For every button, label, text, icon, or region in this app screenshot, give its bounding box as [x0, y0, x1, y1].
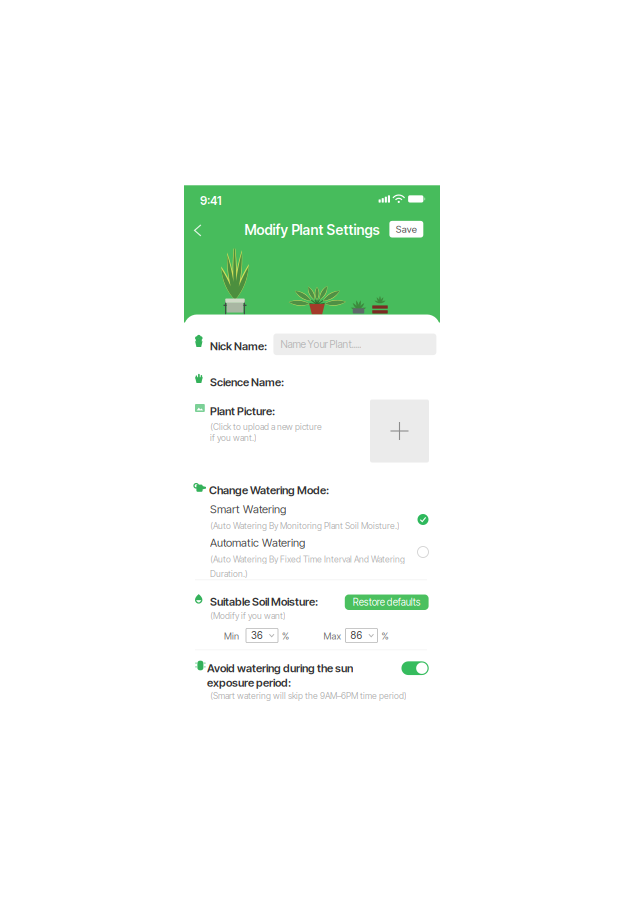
staticText: Name Your Plant..... — [280, 338, 361, 350]
staticText: (Modify if you want) — [210, 610, 286, 621]
staticText: Max — [323, 630, 341, 642]
staticText: 9:41 — [200, 194, 222, 208]
staticText: % — [282, 630, 289, 642]
staticText: exposure period: — [207, 676, 291, 690]
staticText: if you want.) — [210, 432, 257, 443]
staticText: 86 — [350, 629, 362, 641]
button[interactable]: Restore defaults — [345, 594, 429, 610]
button[interactable]: Save — [389, 221, 423, 237]
staticText: 36 — [251, 629, 263, 641]
staticText: Automatic Watering — [210, 536, 305, 550]
staticText: (Auto Watering By Fixed Time Interval An… — [210, 554, 405, 565]
staticText: (Smart watering will skip the 9AM–6PM ti… — [210, 690, 407, 701]
staticText: Restore defaults — [353, 596, 421, 608]
button[interactable]: Back — [190, 219, 206, 241]
staticText: Modify Plant Settings — [244, 221, 379, 238]
staticText: % — [381, 630, 388, 642]
button[interactable]: Automatic Watering — [210, 536, 400, 574]
staticText: Suitable Soil Moisture: — [210, 595, 318, 609]
staticText: Save — [396, 223, 417, 235]
staticText: Plant Picture: — [210, 404, 275, 418]
staticText: Science Name: — [210, 375, 284, 389]
staticText: Nick Name: — [210, 339, 267, 353]
staticText: Smart Watering — [210, 502, 286, 516]
button[interactable]: 36 — [246, 628, 278, 642]
staticText: (Auto Watering By Monitoring Plant Soil … — [210, 521, 400, 531]
button[interactable]: Automatic watering — [414, 543, 431, 560]
button[interactable]: Avoid watering during the sun exposure p… — [401, 661, 429, 676]
button[interactable]: Smart watering selected — [414, 511, 431, 528]
staticText: Change Watering Mode: — [209, 483, 329, 497]
button[interactable]: Upload plant picture — [370, 399, 429, 462]
staticText: Avoid watering during the sun — [207, 661, 353, 675]
staticText: Min — [224, 630, 239, 642]
button[interactable]: 86 — [345, 628, 377, 642]
staticText: (Click to upload a new picture — [210, 421, 322, 432]
staticText: Duration.) — [210, 568, 248, 579]
button[interactable]: Smart Watering — [210, 502, 400, 528]
